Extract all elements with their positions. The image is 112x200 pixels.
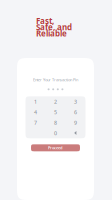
staticText: 7 bbox=[34, 119, 37, 126]
button[interactable]: Delete bbox=[65, 128, 85, 138]
button[interactable]: 8 bbox=[45, 117, 65, 128]
staticText: 5 bbox=[54, 108, 57, 116]
staticText: Reliable bbox=[36, 28, 67, 39]
staticText: Fast, bbox=[36, 15, 54, 26]
staticText: 8 bbox=[54, 119, 57, 126]
staticText: Proceed bbox=[48, 145, 63, 150]
staticText: 3 bbox=[74, 98, 77, 105]
button[interactable]: 1 bbox=[25, 96, 45, 107]
staticText: 9 bbox=[74, 119, 77, 126]
button[interactable]: 4 bbox=[25, 107, 45, 117]
staticText: 6 bbox=[74, 108, 77, 116]
staticText: 4 bbox=[34, 108, 37, 116]
staticText: Enter Your Transaction Pin bbox=[33, 77, 78, 82]
staticText: Safe, and bbox=[36, 22, 72, 32]
staticText: 1 bbox=[34, 98, 37, 105]
button[interactable]: 7 bbox=[25, 117, 45, 128]
button[interactable]: Proceed bbox=[31, 144, 80, 151]
button[interactable]: 3 bbox=[65, 96, 85, 107]
button[interactable]: 5 bbox=[45, 107, 65, 117]
button[interactable]: 6 bbox=[65, 107, 85, 117]
button[interactable]: 0 bbox=[45, 128, 65, 138]
staticText: 0 bbox=[54, 129, 57, 137]
button[interactable]: 2 bbox=[45, 96, 65, 107]
button[interactable]: 9 bbox=[65, 117, 85, 128]
staticText: 2 bbox=[54, 98, 57, 105]
